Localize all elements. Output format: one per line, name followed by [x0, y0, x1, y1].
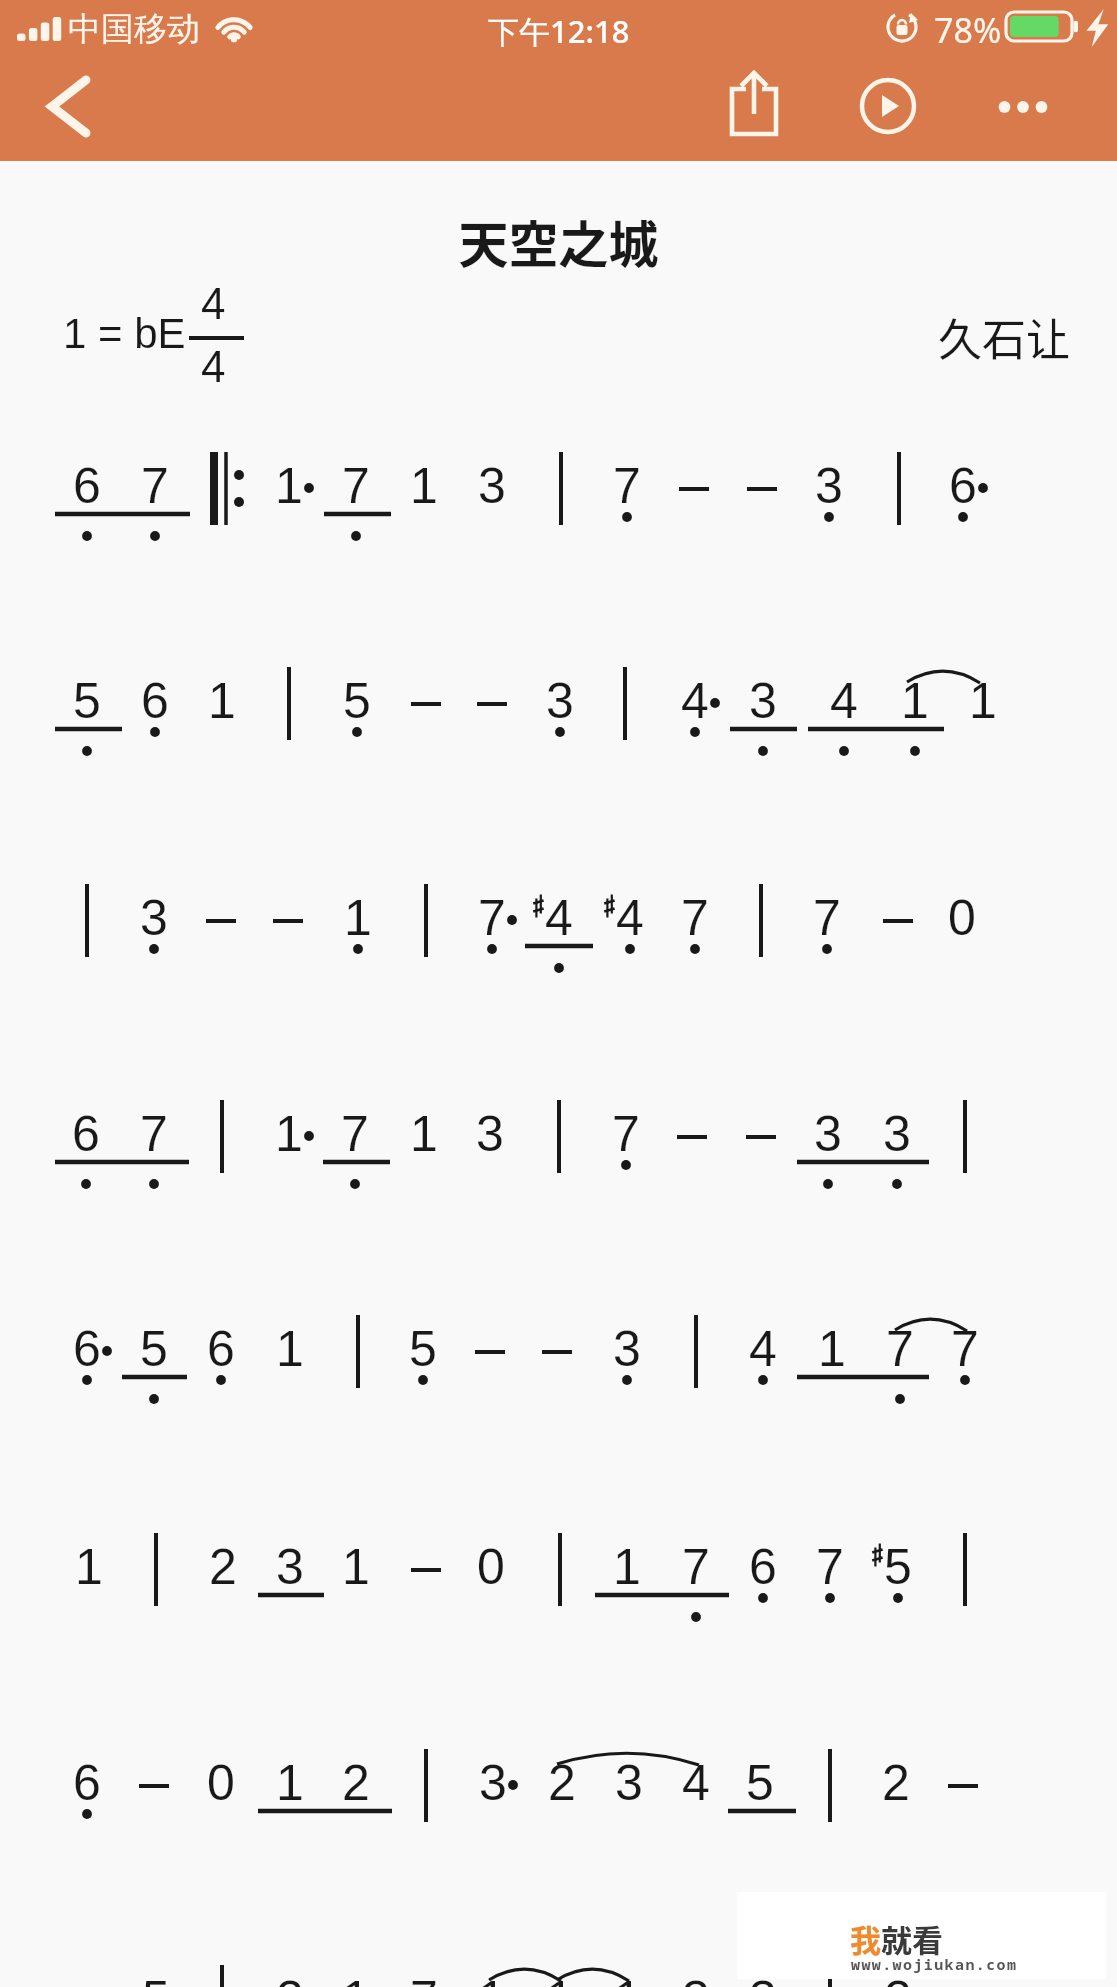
- staticText: 我: [850, 1916, 881, 1961]
- staticText: 3: [749, 673, 777, 729]
- staticText: 7: [886, 1321, 914, 1377]
- staticText: 3: [478, 458, 506, 514]
- staticText: 1 = bE: [63, 310, 186, 357]
- staticText: 3: [883, 1106, 911, 1162]
- staticText: 4: [545, 890, 573, 946]
- staticText: 7: [816, 1539, 844, 1595]
- staticText: 4: [749, 1321, 777, 1377]
- staticText: 0: [477, 1539, 505, 1595]
- staticText: 7: [342, 458, 370, 514]
- button[interactable]: More options: [979, 63, 1067, 151]
- staticText: 1: [410, 1106, 438, 1162]
- button[interactable]: Play: [844, 62, 932, 150]
- staticText: 5: [409, 1321, 437, 1377]
- staticText: 2: [276, 1971, 304, 1987]
- staticText: 6: [141, 673, 169, 729]
- staticText: www.wojiukan.com: [851, 1954, 1018, 1974]
- staticText: 5: [884, 1539, 912, 1595]
- staticText: 4: [830, 673, 858, 729]
- staticText: 4: [201, 279, 226, 328]
- staticText: 1: [276, 1321, 304, 1377]
- staticText: 1: [969, 673, 997, 729]
- staticText: 就看: [881, 1916, 943, 1961]
- staticText: 3: [140, 890, 168, 946]
- staticText: 1: [276, 1755, 304, 1811]
- staticText: 1: [613, 1539, 641, 1595]
- staticText: 1: [75, 1539, 103, 1595]
- staticText: 1: [275, 458, 303, 514]
- staticText: 1: [818, 1321, 846, 1377]
- staticText: 1: [275, 1106, 303, 1162]
- staticText: 下午12:18: [488, 10, 630, 52]
- staticText: 2: [884, 1971, 912, 1987]
- staticText: 4: [616, 890, 644, 946]
- staticText: 4: [682, 1755, 710, 1811]
- staticText: 7: [813, 890, 841, 946]
- staticText: 2: [548, 1755, 576, 1811]
- staticText: 6: [73, 458, 101, 514]
- staticText: 4: [201, 342, 226, 391]
- staticText: 久石让: [938, 305, 1070, 369]
- staticText: 1: [208, 673, 236, 729]
- button[interactable]: Back: [22, 54, 114, 146]
- staticText: 3: [546, 673, 574, 729]
- staticText: 7: [478, 890, 506, 946]
- staticText: 5: [746, 1755, 774, 1811]
- staticText: 78%: [934, 7, 1002, 53]
- staticText: 1: [901, 673, 929, 729]
- staticText: 7: [613, 458, 641, 514]
- staticText: 1: [344, 890, 372, 946]
- staticText: 6: [749, 1539, 777, 1595]
- staticText: 1: [546, 1971, 574, 1987]
- staticText: 1: [410, 458, 438, 514]
- staticText: 天空之城: [0, 205, 1117, 277]
- staticText: 1: [614, 1971, 642, 1987]
- staticText: 7: [682, 1539, 710, 1595]
- staticText: 7: [951, 1321, 979, 1377]
- staticText: 7: [410, 1971, 438, 1987]
- staticText: 5: [142, 1971, 170, 1987]
- staticText: 3: [276, 1539, 304, 1595]
- staticText: 5: [73, 673, 101, 729]
- staticText: 3: [682, 1971, 710, 1987]
- staticText: 3: [814, 1106, 842, 1162]
- staticText: 4: [681, 673, 709, 729]
- staticText: 6: [73, 1321, 101, 1377]
- staticText: 1: [342, 1539, 370, 1595]
- staticText: 0: [207, 1755, 235, 1811]
- staticText: 2: [342, 1755, 370, 1811]
- staticText: 5: [343, 673, 371, 729]
- staticText: 6: [72, 1106, 100, 1162]
- staticText: 5: [140, 1321, 168, 1377]
- staticText: 7: [140, 1106, 168, 1162]
- staticText: 3: [615, 1755, 643, 1811]
- staticText: 2: [209, 1539, 237, 1595]
- staticText: 3: [749, 1971, 777, 1987]
- staticText: 1: [478, 1971, 506, 1987]
- staticText: 7: [681, 890, 709, 946]
- staticText: 1: [342, 1971, 370, 1987]
- staticText: 3: [815, 458, 843, 514]
- staticText: 7: [612, 1106, 640, 1162]
- staticText: 2: [882, 1755, 910, 1811]
- staticText: 7: [341, 1106, 369, 1162]
- staticText: 6: [207, 1321, 235, 1377]
- staticText: 3: [613, 1321, 641, 1377]
- staticText: 7: [141, 458, 169, 514]
- button[interactable]: Share: [710, 60, 798, 148]
- staticText: 中国移动: [68, 8, 200, 50]
- staticText: 3: [479, 1755, 507, 1811]
- staticText: 6: [949, 458, 977, 514]
- staticText: 3: [476, 1106, 504, 1162]
- staticText: 6: [73, 1755, 101, 1811]
- staticText: 0: [948, 890, 976, 946]
